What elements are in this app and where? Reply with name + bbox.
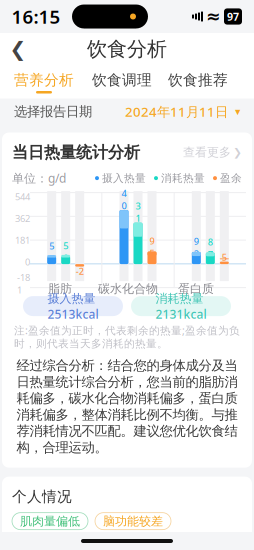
staticText: 注:盈余值为正时，代表剩余的热量;盈余值为负时，则代表当天多消耗的热量。 [14, 323, 240, 350]
button[interactable]: 营养分析 [4, 65, 84, 98]
staticText: 饮食分析 [87, 37, 167, 61]
staticText: 经过综合分析：结合您的身体成分及当日热量统计综合分析，您当前的脂肪消耗偏多，碳水… [16, 357, 237, 456]
staticText: 脑功能较差 [103, 514, 163, 528]
staticText: 87 [208, 236, 213, 260]
staticText: 查看更多 [183, 145, 231, 160]
button[interactable]: 查看更多 [183, 145, 242, 160]
staticText: 消耗热量 [161, 172, 205, 185]
staticText: 饮食推荐 [168, 71, 228, 89]
staticText: ▾ [235, 105, 240, 118]
staticText: 5 [222, 251, 227, 263]
staticText: 单位：g/d [12, 170, 66, 186]
staticText: 肌肉量偏低 [20, 514, 80, 528]
staticText: ❯ [233, 146, 242, 158]
staticText: 三餐摄入推荐 [12, 541, 102, 550]
staticText: 92 [194, 235, 199, 260]
staticText: 蛋白质 [178, 281, 214, 296]
staticText: 59 [63, 239, 68, 264]
staticText: 个人情况 [12, 488, 72, 506]
staticText: 544 [15, 190, 30, 203]
staticText: 盈余 [220, 172, 242, 185]
button[interactable]: 饮食推荐 [160, 65, 236, 98]
staticText: 0 [25, 256, 30, 268]
staticText: 362 [15, 212, 30, 225]
staticText: ❮ [9, 38, 26, 60]
staticText: ≈ [206, 7, 221, 26]
staticText: 313 [135, 200, 140, 237]
staticText: 57 [49, 240, 54, 264]
staticText: 摄入热量 2513kcal [47, 290, 98, 322]
button[interactable]: 饮食调理 [84, 65, 160, 98]
staticText: 97 [227, 9, 239, 24]
button[interactable]: Back [0, 34, 36, 64]
staticText: 选择报告日期 [14, 103, 92, 120]
staticText: 脂肪 [48, 281, 72, 296]
staticText: 当日热量统计分析 [12, 142, 140, 162]
staticText: 2024年11月11日 [125, 103, 228, 120]
staticText: -2 [76, 265, 84, 277]
staticText: 摄入热量 [102, 172, 146, 185]
staticText: 16:15 [11, 4, 60, 29]
staticText: 408 [121, 187, 126, 224]
staticText: 95 [149, 235, 154, 259]
staticText: 181 [15, 234, 30, 246]
staticText: 饮食调理 [92, 71, 152, 89]
staticText: 消耗热量 2131kcal [155, 290, 206, 322]
staticText: 碳水化合物 [98, 281, 158, 296]
staticText: 营养分析 [14, 71, 74, 89]
button[interactable]: 选择报告日期 [0, 98, 254, 124]
staticText: -181 [17, 271, 30, 296]
